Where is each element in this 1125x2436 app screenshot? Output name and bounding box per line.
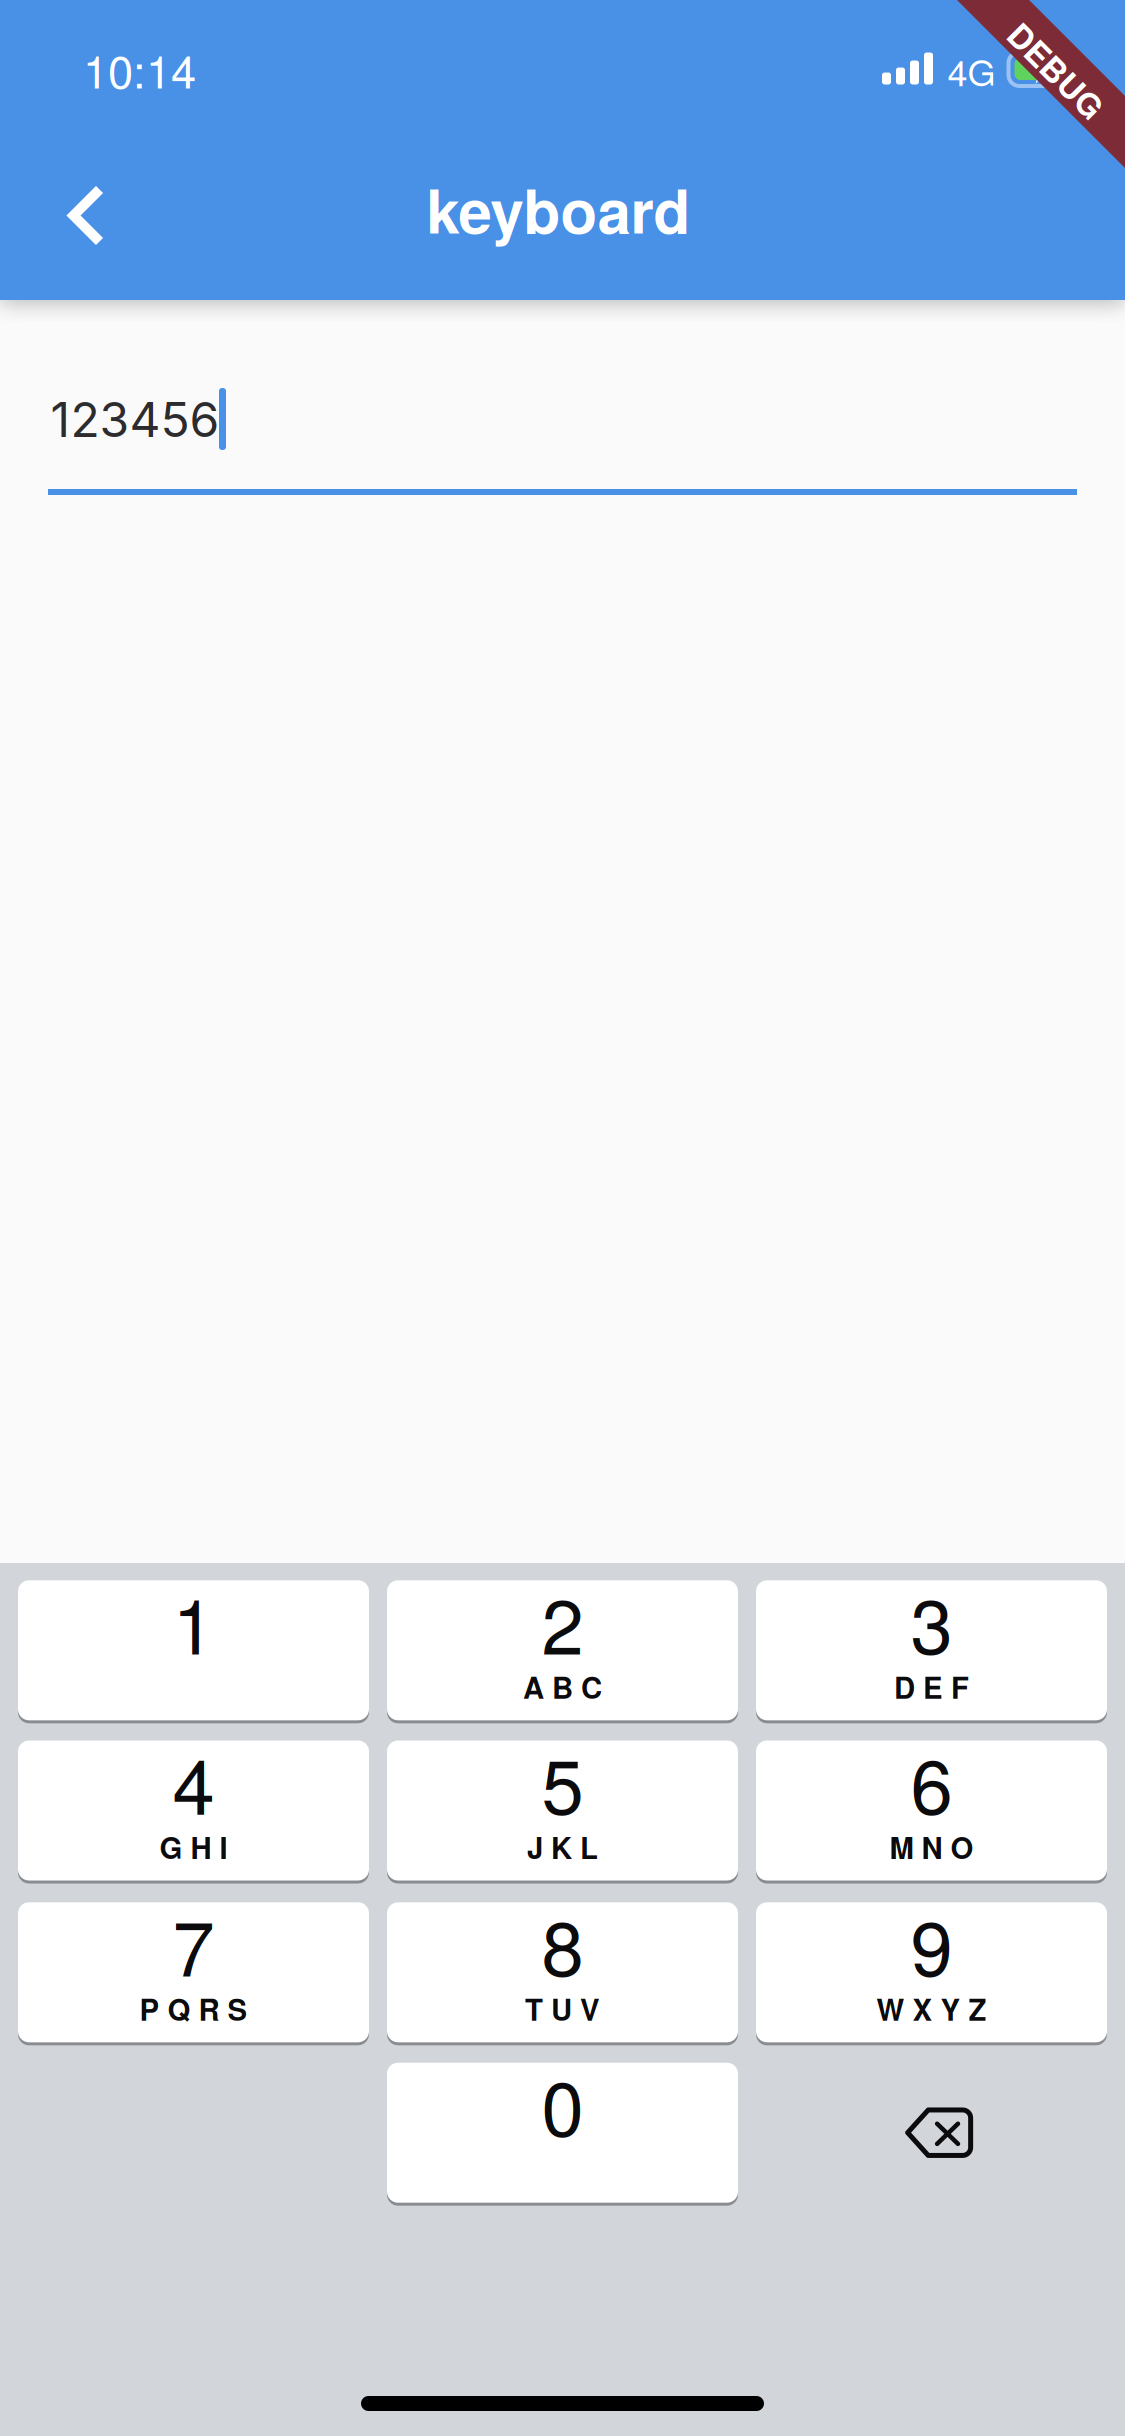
staticText: 4: [172, 1727, 214, 1836]
staticText: J K L: [527, 1826, 598, 1868]
button[interactable]: 4: [18, 1740, 369, 1880]
button[interactable]: 2: [387, 1580, 738, 1720]
staticText: W X Y Z: [876, 1988, 986, 2030]
staticText: 10:14: [83, 36, 196, 101]
staticText: 4G: [947, 45, 995, 96]
staticText: 2: [541, 1567, 583, 1676]
button[interactable]: 7: [18, 1902, 369, 2042]
staticText: 8: [541, 1889, 583, 1998]
staticText: A B C: [523, 1666, 602, 1708]
button[interactable]: 3: [756, 1580, 1107, 1720]
staticText: DEBUG: [996, 46, 1116, 94]
button[interactable]: Delete: [763, 2063, 1114, 2203]
staticText: 1: [172, 1567, 214, 1676]
staticText: D E F: [894, 1666, 969, 1708]
staticText: 5: [541, 1727, 583, 1836]
staticText: 6: [910, 1727, 952, 1836]
button[interactable]: 0: [387, 2063, 738, 2203]
button[interactable]: Back: [16, 145, 156, 285]
staticText: 0: [541, 2050, 583, 2158]
staticText: keyboard: [426, 166, 690, 252]
staticText: 3: [910, 1567, 952, 1676]
button[interactable]: 1: [18, 1580, 369, 1720]
button[interactable]: 8: [387, 1902, 738, 2042]
staticText: M N O: [889, 1826, 973, 1868]
staticText: P Q R S: [139, 1988, 247, 2030]
staticText: T U V: [525, 1988, 600, 2030]
button[interactable]: 9: [756, 1902, 1107, 2042]
staticText: 9: [910, 1889, 952, 1998]
button[interactable]: 5: [387, 1740, 738, 1880]
staticText: 123456: [50, 390, 219, 449]
button[interactable]: 6: [756, 1740, 1107, 1880]
staticText: G H I: [159, 1826, 227, 1868]
staticText: 7: [172, 1889, 214, 1998]
